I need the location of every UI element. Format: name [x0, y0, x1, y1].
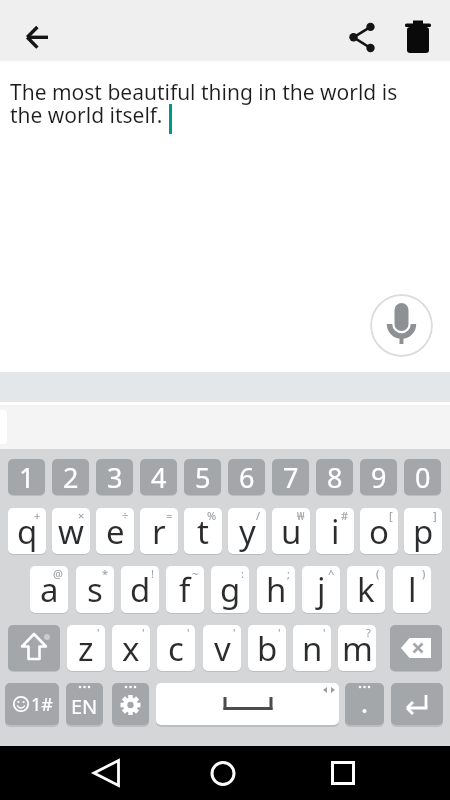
staticText: x: [122, 626, 140, 671]
staticText: 1: [19, 459, 35, 495]
button[interactable]: [112, 683, 149, 725]
staticText: 5: [195, 459, 211, 495]
button[interactable]: [156, 683, 339, 725]
button[interactable]: 9: [360, 459, 397, 495]
staticText: @: [53, 566, 63, 581]
staticText: *: [102, 566, 109, 581]
button[interactable]: 2: [52, 459, 89, 495]
staticText: ^: [328, 566, 335, 581]
button[interactable]: 5: [184, 459, 221, 495]
button[interactable]: f: [166, 566, 204, 613]
staticText: g: [220, 567, 241, 612]
button[interactable]: q: [8, 508, 46, 554]
staticText: =: [166, 508, 173, 523]
button[interactable]: [14, 14, 62, 62]
staticText: ': [142, 625, 145, 640]
button[interactable]: y: [228, 508, 266, 554]
staticText: o: [369, 509, 389, 554]
staticText: ': [323, 625, 326, 640]
button[interactable]: [391, 683, 443, 725]
button[interactable]: d: [121, 566, 159, 613]
staticText: p: [413, 509, 434, 554]
staticText: v: [214, 626, 231, 671]
button[interactable]: c: [157, 625, 195, 671]
staticText: ×: [78, 508, 85, 523]
staticText: l: [408, 567, 417, 612]
staticText: ₩: [297, 508, 305, 523]
staticText: ': [97, 625, 100, 640]
staticText: /: [256, 508, 261, 523]
button[interactable]: 4: [140, 459, 177, 495]
button[interactable]: [345, 683, 384, 725]
button[interactable]: [321, 751, 365, 795]
staticText: ;: [287, 566, 290, 581]
staticText: ÷: [122, 508, 129, 523]
staticText: ': [233, 625, 236, 640]
button[interactable]: b: [248, 625, 286, 671]
staticText: ~: [192, 566, 199, 581]
button[interactable]: [338, 14, 386, 62]
button[interactable]: i: [316, 508, 354, 554]
staticText: ': [278, 625, 281, 640]
button[interactable]: z: [67, 625, 105, 671]
button[interactable]: EN: [66, 683, 103, 725]
button[interactable]: 7: [272, 459, 309, 495]
staticText: u: [281, 509, 302, 554]
button[interactable]: x: [112, 625, 150, 671]
button[interactable]: 6: [228, 459, 265, 495]
button[interactable]: e: [96, 508, 134, 554]
staticText: The most beautiful thing in the world is…: [10, 78, 398, 129]
staticText: w: [58, 509, 84, 554]
button[interactable]: o: [360, 508, 398, 554]
button[interactable]: v: [203, 625, 241, 671]
staticText: m: [342, 626, 373, 671]
button[interactable]: m: [338, 625, 376, 671]
button[interactable]: g: [211, 566, 249, 613]
staticText: b: [257, 626, 278, 671]
button[interactable]: u: [272, 508, 310, 554]
button[interactable]: s: [76, 566, 114, 613]
staticText: t: [197, 509, 209, 554]
button[interactable]: r: [140, 508, 178, 554]
button[interactable]: t: [184, 508, 222, 554]
staticText: f: [179, 567, 191, 612]
staticText: 0: [415, 459, 431, 495]
button[interactable]: n: [293, 625, 331, 671]
button[interactable]: 1: [8, 459, 45, 495]
staticText: a: [40, 567, 59, 612]
staticText: ): [422, 566, 426, 581]
button[interactable]: [8, 625, 60, 671]
button[interactable]: [84, 751, 128, 795]
button[interactable]: p: [404, 508, 442, 554]
button[interactable]: a: [30, 566, 68, 613]
staticText: s: [87, 567, 103, 612]
button[interactable]: h: [257, 566, 295, 613]
staticText: i: [331, 509, 340, 554]
staticText: (: [376, 566, 380, 581]
button[interactable]: [201, 751, 245, 795]
staticText: k: [357, 567, 375, 612]
button[interactable]: w: [52, 508, 90, 554]
staticText: d: [130, 567, 151, 612]
staticText: 8: [327, 459, 343, 495]
staticText: ': [187, 625, 190, 640]
staticText: #: [341, 508, 349, 523]
button[interactable]: 1#: [5, 683, 59, 725]
staticText: [: [389, 508, 393, 523]
button[interactable]: [394, 14, 442, 62]
button[interactable]: [370, 294, 433, 357]
staticText: 2: [63, 459, 79, 495]
staticText: 6: [239, 459, 255, 495]
button[interactable]: 8: [316, 459, 353, 495]
button[interactable]: k: [347, 566, 385, 613]
button[interactable]: [390, 625, 442, 671]
staticText: ]: [433, 508, 437, 523]
button[interactable]: 0: [404, 459, 441, 495]
staticText: h: [266, 567, 287, 612]
staticText: :: [241, 566, 244, 581]
button[interactable]: j: [302, 566, 340, 613]
staticText: EN: [71, 693, 98, 720]
button[interactable]: l: [393, 566, 431, 613]
staticText: %: [207, 508, 217, 523]
button[interactable]: 3: [96, 459, 133, 495]
